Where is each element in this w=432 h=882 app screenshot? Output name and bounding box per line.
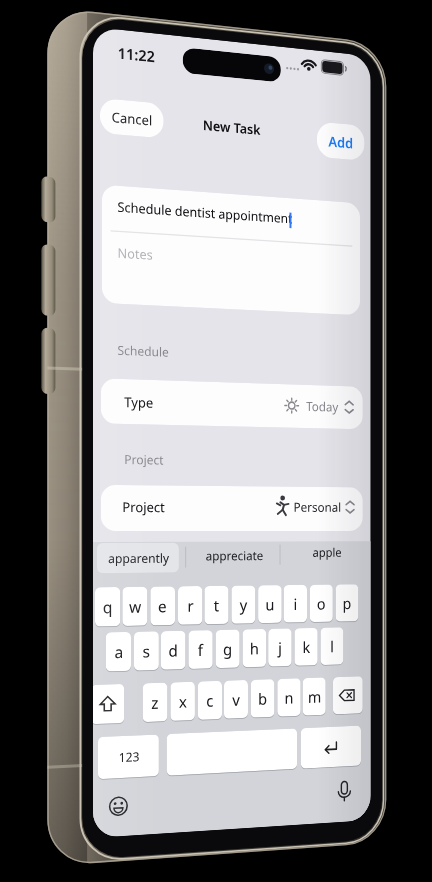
button[interactable]: s (134, 631, 159, 671)
button[interactable]: d (161, 631, 185, 670)
staticText: k (302, 637, 311, 658)
button[interactable]: Add (317, 121, 365, 161)
button[interactable]: k (294, 628, 318, 666)
button[interactable]: u (258, 585, 282, 623)
button[interactable] (97, 543, 179, 573)
staticText: c (206, 690, 214, 712)
staticText: Notes (117, 244, 153, 264)
button[interactable]: c (198, 681, 222, 720)
button[interactable]: r (178, 586, 202, 625)
staticText: b (258, 688, 267, 710)
staticText: g (223, 638, 232, 660)
staticText: apparently (108, 550, 169, 567)
staticText: t (214, 595, 219, 616)
staticText: r (187, 595, 194, 617)
staticText: 11:22 (117, 42, 155, 64)
button[interactable]: i (284, 585, 307, 623)
button[interactable]: e (150, 586, 175, 625)
button[interactable]: h (242, 629, 266, 667)
button[interactable]: m (302, 677, 326, 716)
staticText: s (143, 640, 150, 662)
staticText: q (103, 596, 113, 618)
staticText: Cancel (112, 108, 153, 130)
button[interactable]: Cancel (100, 98, 164, 138)
button[interactable]: y (231, 585, 255, 624)
staticText: 123 (118, 748, 140, 766)
staticText: j (278, 637, 283, 659)
staticText: Add (328, 131, 353, 152)
staticText: u (265, 594, 274, 615)
staticText: o (317, 593, 326, 614)
staticText: l (330, 636, 335, 657)
staticText: Personal (293, 498, 342, 516)
button[interactable]: o (310, 584, 333, 622)
staticText: d (168, 640, 178, 662)
button[interactable] (102, 184, 360, 315)
button[interactable] (98, 734, 159, 779)
button[interactable]: a (106, 632, 131, 671)
button[interactable]: b (251, 679, 274, 718)
staticText: p (343, 593, 351, 614)
button[interactable]: v (224, 680, 248, 719)
staticText: appreciate (205, 547, 264, 564)
button[interactable]: l (320, 627, 343, 665)
button[interactable] (101, 789, 136, 827)
staticText: w (129, 596, 142, 618)
staticText: h (250, 638, 259, 659)
staticText: Type (124, 393, 154, 412)
staticText: Schedule dentist appointment (117, 198, 293, 227)
button[interactable] (328, 775, 360, 811)
staticText: x (179, 691, 187, 713)
button[interactable]: t (204, 586, 228, 624)
staticText: i (293, 593, 298, 615)
button[interactable]: f (188, 630, 213, 669)
staticText: Project (124, 451, 164, 467)
staticText: m (308, 686, 321, 708)
staticText: a (114, 641, 123, 663)
staticText: n (284, 687, 293, 709)
staticText: apple (312, 544, 342, 561)
button[interactable]: j (268, 628, 292, 667)
staticText: Today (306, 397, 339, 415)
button[interactable] (191, 543, 276, 571)
staticText: New Task (202, 116, 261, 139)
button[interactable] (101, 378, 363, 429)
button[interactable]: n (277, 678, 301, 717)
button[interactable] (333, 676, 363, 714)
staticText: Project (122, 498, 166, 516)
button[interactable] (301, 726, 361, 769)
button[interactable] (287, 539, 365, 567)
button[interactable]: q (95, 587, 120, 626)
button[interactable]: z (143, 682, 167, 722)
button[interactable]: w (122, 587, 147, 626)
staticText: z (151, 692, 159, 714)
staticText: v (232, 689, 241, 711)
button[interactable] (166, 728, 297, 776)
button[interactable]: x (170, 682, 195, 721)
button[interactable]: g (216, 629, 240, 668)
staticText: y (240, 594, 248, 616)
staticText: f (198, 639, 203, 661)
staticText: Schedule (117, 342, 169, 360)
button[interactable]: p (335, 584, 358, 622)
staticText: e (158, 595, 167, 617)
button[interactable] (93, 684, 124, 724)
button[interactable] (101, 485, 363, 531)
